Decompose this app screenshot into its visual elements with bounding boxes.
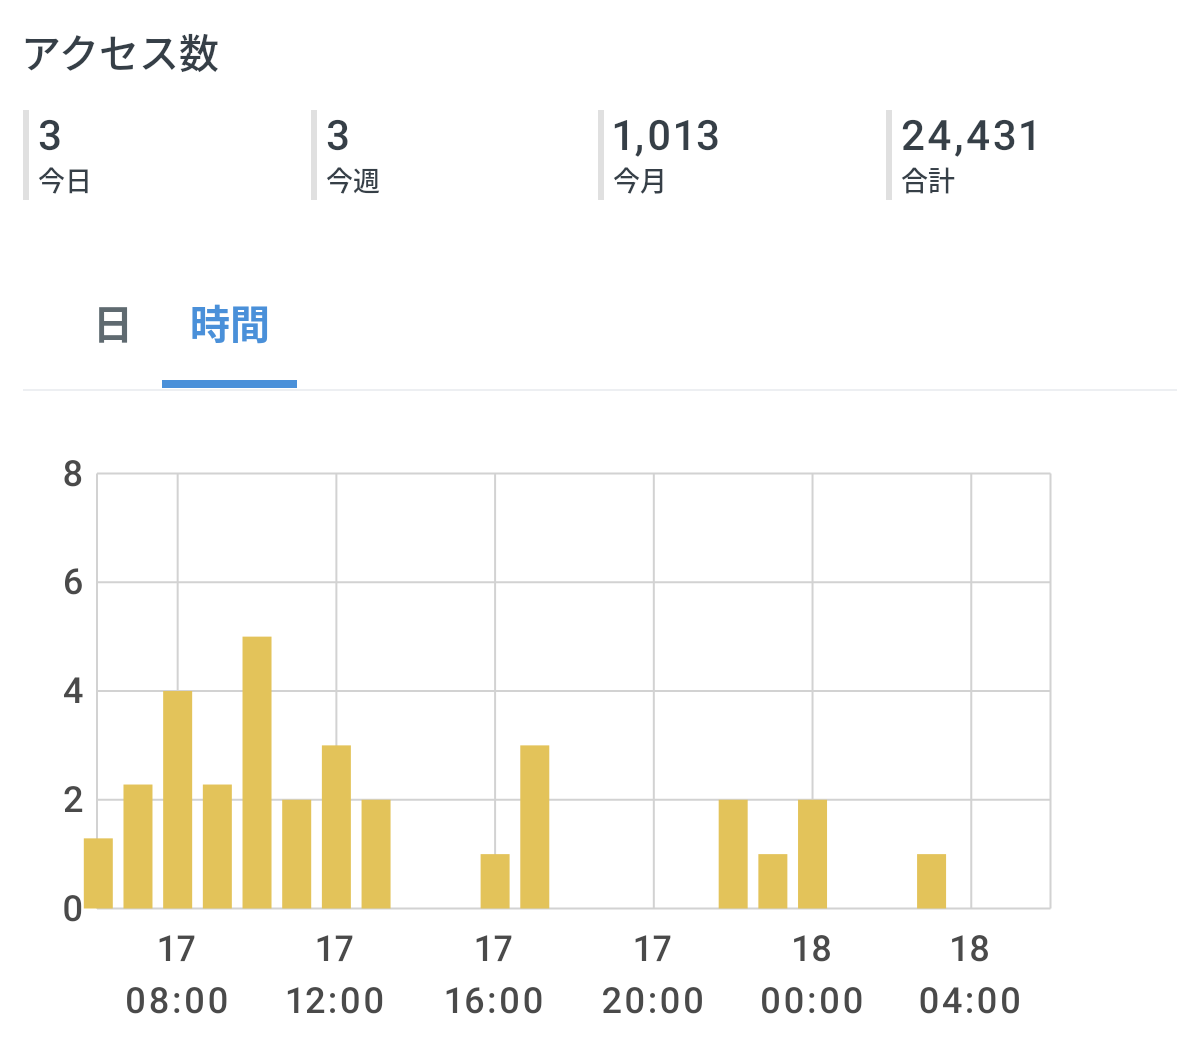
staticText: 18 [950,928,993,970]
staticText: 17 [316,928,356,970]
button[interactable]: 3 [23,110,311,200]
staticText: 24,431 [901,111,1042,160]
button[interactable]: 24,431 [886,110,1174,200]
staticText: 2 [63,779,86,821]
button[interactable]: 3 [311,110,599,200]
staticText: 0 [62,888,86,930]
staticText: 20:00 [601,980,707,1022]
staticText: 17 [475,928,515,970]
staticText: 16:00 [445,980,546,1022]
staticText: 17 [634,928,674,970]
staticText: 00:00 [760,980,866,1022]
staticText: 時間 [190,293,270,351]
staticText: 08:00 [125,980,231,1022]
staticText: 4 [63,670,86,712]
staticText: 3 [326,111,353,160]
staticText: 18 [792,928,835,970]
staticText: 1,013 [613,111,723,160]
staticText: 今月 [613,160,667,199]
staticText: 04:00 [918,980,1024,1022]
staticText: 12:00 [286,980,387,1022]
staticText: 6 [62,561,86,603]
staticText: 3 [38,111,65,160]
staticText: 今日 [38,160,92,199]
button[interactable]: 日 [68,286,158,388]
staticText: 17 [158,928,198,970]
staticText: 8 [62,453,86,495]
staticText: 今週 [326,160,380,199]
button[interactable]: 時間 [162,286,297,388]
button[interactable]: 1,013 [598,110,886,200]
staticText: 合計 [901,160,955,199]
staticText: 日 [93,293,133,351]
staticText: アクセス数 [21,22,219,80]
